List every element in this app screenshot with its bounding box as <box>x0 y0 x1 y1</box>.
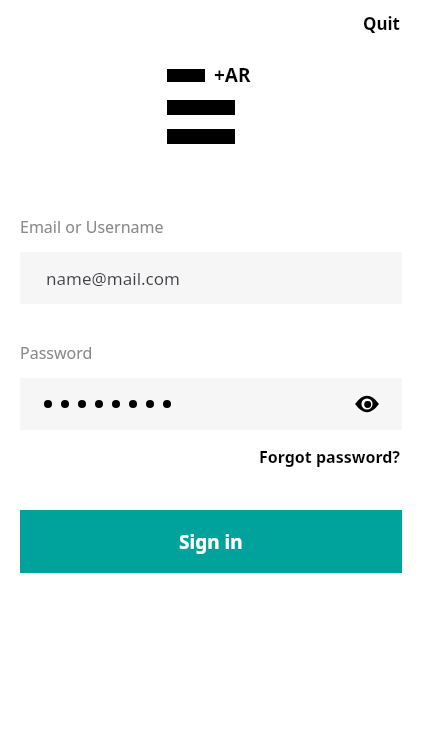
button[interactable]: Forgot password? <box>256 442 402 472</box>
button[interactable]: name@mail.com <box>20 252 402 304</box>
staticText: Quit <box>363 12 400 35</box>
button[interactable]: Show password <box>352 389 382 419</box>
staticText: Sign in <box>179 529 243 555</box>
staticText: name@mail.com <box>46 267 180 290</box>
button[interactable]: Sign in <box>20 510 402 573</box>
staticText: +AR <box>214 62 251 88</box>
staticText: Password <box>20 342 93 364</box>
button[interactable]: Show password <box>20 378 402 430</box>
staticText: Email or Username <box>20 216 164 238</box>
button[interactable]: Quit <box>361 8 402 39</box>
staticText: Forgot password? <box>258 446 400 468</box>
